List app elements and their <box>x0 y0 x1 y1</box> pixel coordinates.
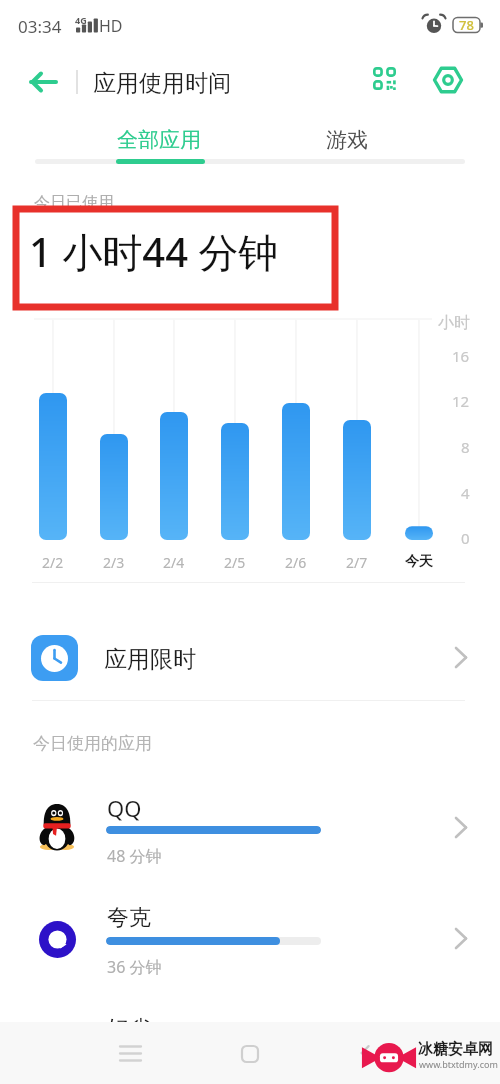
button[interactable]: 全部应用 <box>97 121 221 159</box>
button[interactable]: Recent apps <box>114 1038 148 1072</box>
staticText: 今天 <box>405 553 433 571</box>
staticText: 冰糖安卓网 <box>418 1040 493 1059</box>
staticText: 2/5 <box>224 553 246 572</box>
button[interactable]: 夸克 <box>0 884 500 994</box>
staticText: 2/3 <box>103 553 125 572</box>
button[interactable]: 好省 <box>0 995 500 1084</box>
staticText: 4G <box>75 14 87 26</box>
staticText: 36 分钟 <box>107 956 162 978</box>
staticText: 游戏 <box>326 127 368 153</box>
staticText: 2/7 <box>346 553 368 572</box>
button[interactable]: 游戏 <box>297 121 397 159</box>
staticText: 12 <box>452 391 470 411</box>
button[interactable]: Settings <box>430 62 466 98</box>
staticText: 03:34 <box>18 15 62 38</box>
staticText: 应用限时 <box>104 645 196 674</box>
staticText: 2/2 <box>42 553 64 572</box>
staticText: 夸克 <box>107 904 151 932</box>
button[interactable]: QQ <box>0 773 500 883</box>
button[interactable]: Scan QR code <box>367 61 401 95</box>
staticText: HD <box>99 15 123 37</box>
staticText: www.btxtdmy.com <box>419 1058 498 1070</box>
staticText: 78 <box>459 16 474 34</box>
staticText: 4 <box>461 483 470 503</box>
staticText: 16 <box>452 346 470 366</box>
staticText: 2/6 <box>285 553 307 572</box>
staticText: 0 <box>461 528 470 548</box>
staticText: 今日使用的应用 <box>33 733 152 754</box>
staticText: 小时 <box>438 313 470 333</box>
staticText: 1 小时44 分钟 <box>29 224 279 279</box>
button[interactable]: 应用限时 <box>0 583 500 694</box>
staticText: QQ <box>107 793 142 823</box>
staticText: 2/4 <box>163 553 185 572</box>
staticText: 应用使用时间 <box>93 69 231 98</box>
staticText: 48 分钟 <box>107 845 162 867</box>
button[interactable]: Home <box>234 1038 266 1070</box>
staticText: 8 <box>461 437 470 457</box>
staticText: 今日已使用 <box>34 193 114 213</box>
button[interactable]: Back <box>28 68 58 96</box>
staticText: 好省 <box>107 1015 151 1043</box>
button[interactable]: Back <box>350 1038 380 1068</box>
staticText: 全部应用 <box>117 127 201 153</box>
